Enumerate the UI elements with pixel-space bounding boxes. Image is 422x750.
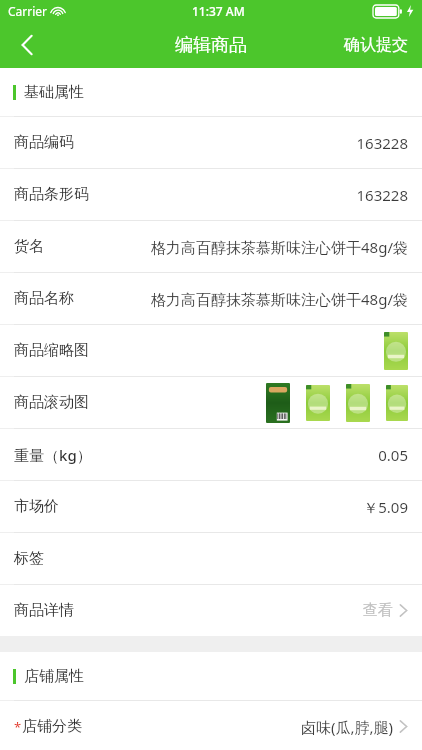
staticText: 重量（kg） xyxy=(14,445,92,465)
button[interactable]: 市场价 xyxy=(0,481,422,532)
staticText: Carrier xyxy=(8,3,48,19)
staticText: 市场价 xyxy=(14,497,59,516)
button[interactable]: 重量（kg） xyxy=(0,429,422,480)
button[interactable]: * xyxy=(0,701,422,750)
button[interactable]: 货名 xyxy=(0,221,422,272)
staticText: 0.05 xyxy=(378,445,408,465)
button[interactable]: 商品条形码 xyxy=(0,169,422,220)
staticText: 商品编码 xyxy=(14,133,74,152)
staticText: * xyxy=(14,718,22,736)
button[interactable]: 标签 xyxy=(0,533,422,584)
staticText: 商品条形码 xyxy=(14,185,89,204)
staticText: 店铺属性 xyxy=(24,667,84,686)
button[interactable]: 商品缩略图 xyxy=(0,325,422,376)
staticText: 标签 xyxy=(14,549,44,568)
staticText: 店铺分类 xyxy=(22,717,82,736)
staticText: 确认提交 xyxy=(344,35,408,55)
staticText: 货名 xyxy=(14,237,44,256)
staticText: 格力高百醇抹茶慕斯味注心饼干48g/袋 xyxy=(151,289,408,309)
button[interactable]: 商品详情 xyxy=(0,585,422,636)
staticText: 编辑商品 xyxy=(175,34,247,57)
staticText: 163228 xyxy=(356,133,408,153)
staticText: ￥5.09 xyxy=(363,497,408,517)
button[interactable]: 商品名称 xyxy=(0,273,422,324)
staticText: 商品名称 xyxy=(14,289,74,308)
button[interactable]: 确认提交 xyxy=(330,22,422,68)
staticText: 商品缩略图 xyxy=(14,341,89,360)
staticText: 11:37 AM xyxy=(192,3,245,19)
staticText: 查看 xyxy=(363,601,393,620)
staticText: 商品滚动图 xyxy=(14,393,89,412)
staticText: 基础属性 xyxy=(24,83,84,102)
button[interactable]: Back xyxy=(0,22,54,68)
button[interactable]: 商品编码 xyxy=(0,117,422,168)
staticText: 格力高百醇抹茶慕斯味注心饼干48g/袋 xyxy=(151,237,408,257)
button[interactable]: 商品滚动图 xyxy=(0,377,422,428)
staticText: 163228 xyxy=(356,185,408,205)
staticText: 商品详情 xyxy=(14,601,74,620)
staticText: 卤味(瓜,脖,腿) xyxy=(300,717,393,737)
